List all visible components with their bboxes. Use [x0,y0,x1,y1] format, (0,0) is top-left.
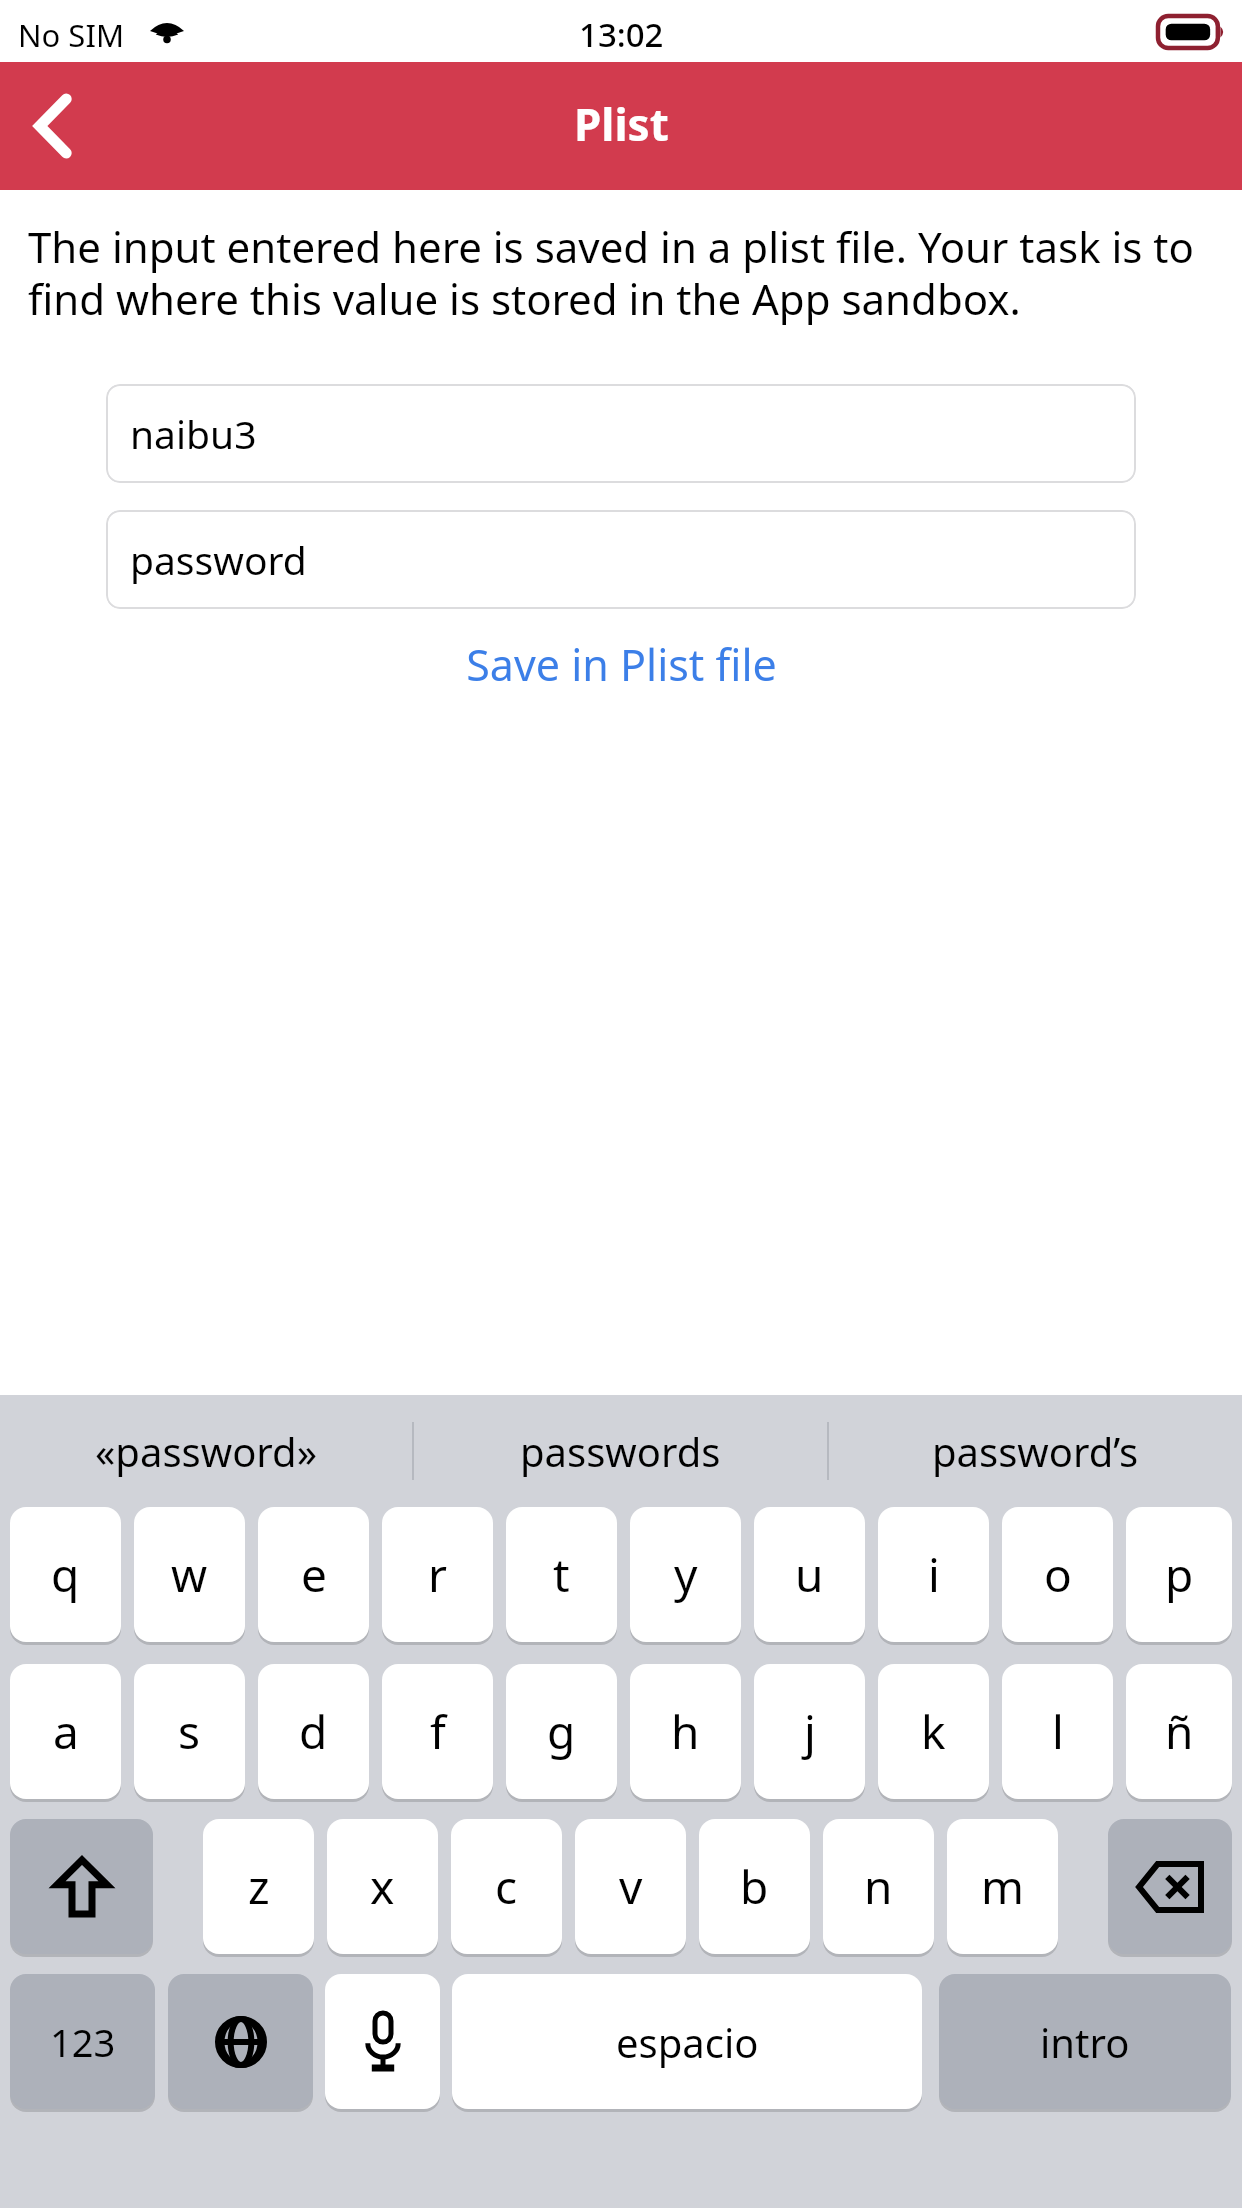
staticText: h [671,1700,700,1763]
staticText: y [674,1543,698,1606]
button[interactable]: u [754,1507,865,1642]
staticText: espacio [616,2015,759,2069]
button[interactable]: s [134,1664,245,1799]
button[interactable]: d [258,1664,369,1799]
staticText: r [428,1543,447,1606]
button[interactable]: z [203,1819,314,1954]
staticText: Save in Plist file [466,635,777,694]
staticText: «password» [95,1424,318,1478]
staticText: s [178,1700,201,1763]
button[interactable]: «password» [0,1395,412,1507]
staticText: x [370,1855,395,1918]
staticText: intro [1040,2015,1130,2069]
button[interactable]: espacio [452,1974,922,2109]
button[interactable]: o [1002,1507,1113,1642]
button[interactable]: ñ [1126,1664,1232,1799]
staticText: naibu3 [130,407,257,460]
button[interactable]: Shift [10,1819,153,1954]
button[interactable]: q [10,1507,121,1642]
button[interactable]: Change keyboard [168,1974,313,2109]
button[interactable]: j [754,1664,865,1799]
staticText: g [547,1700,576,1763]
button[interactable]: c [451,1819,562,1954]
staticText: Plist [574,94,669,154]
button[interactable]: intro [939,1974,1231,2109]
staticText: No SIM [18,14,125,56]
button[interactable]: h [630,1664,741,1799]
button[interactable]: b [699,1819,810,1954]
button[interactable]: a [10,1664,121,1799]
staticText: m [981,1855,1025,1918]
staticText: z [248,1855,270,1918]
button[interactable]: y [630,1507,741,1642]
button[interactable]: Back [0,62,110,190]
button[interactable]: m [947,1819,1058,1954]
staticText: The input entered here is saved in a pli… [28,218,1214,327]
staticText: q [51,1543,80,1606]
staticText: i [928,1543,940,1606]
button[interactable]: Save in Plist file [0,609,1242,719]
button[interactable]: r [382,1507,493,1642]
button[interactable]: e [258,1507,369,1642]
button[interactable]: password [106,510,1136,609]
button[interactable]: password’s [829,1395,1242,1507]
staticText: passwords [520,1424,721,1478]
staticText: f [430,1700,446,1763]
staticText: j [804,1700,816,1763]
button[interactable]: f [382,1664,493,1799]
staticText: v [619,1855,643,1918]
staticText: a [53,1700,79,1763]
staticText: t [553,1543,570,1606]
staticText: b [740,1855,769,1918]
button[interactable]: Backspace [1108,1819,1232,1954]
button[interactable]: p [1126,1507,1232,1642]
staticText: n [864,1855,893,1918]
button[interactable]: Dictation [325,1974,440,2109]
staticText: 13:02 [579,12,664,57]
staticText: 123 [50,2016,116,2068]
staticText: w [171,1543,208,1606]
button[interactable]: g [506,1664,617,1799]
staticText: p [1165,1543,1194,1606]
staticText: l [1052,1700,1064,1763]
staticText: password [130,533,307,586]
button[interactable]: n [823,1819,934,1954]
staticText: e [301,1543,327,1606]
button[interactable]: v [575,1819,686,1954]
staticText: password’s [932,1424,1139,1478]
staticText: ñ [1165,1700,1194,1763]
button[interactable]: k [878,1664,989,1799]
button[interactable]: naibu3 [106,384,1136,483]
button[interactable]: l [1002,1664,1113,1799]
button[interactable]: t [506,1507,617,1642]
button[interactable]: i [878,1507,989,1642]
button[interactable]: x [327,1819,438,1954]
staticText: k [921,1700,946,1763]
button[interactable]: 123 [10,1974,155,2109]
staticText: c [495,1855,518,1918]
staticText: u [795,1543,824,1606]
staticText: d [299,1700,328,1763]
staticText: o [1044,1543,1072,1606]
button[interactable]: w [134,1507,245,1642]
button[interactable]: passwords [414,1395,827,1507]
